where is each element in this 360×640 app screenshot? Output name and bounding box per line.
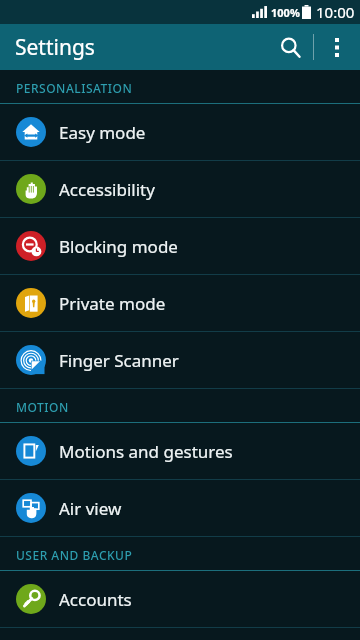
- button[interactable]: Search: [267, 24, 313, 70]
- staticText: 100%: [271, 5, 300, 20]
- staticText: Motions and gestures: [59, 440, 233, 463]
- staticText: Finger Scanner: [59, 349, 179, 372]
- staticText: Accounts: [59, 588, 132, 611]
- button[interactable]: Air view: [0, 480, 360, 536]
- button[interactable]: Blocking mode: [0, 218, 360, 274]
- staticText: Easy mode: [59, 121, 146, 144]
- button[interactable]: Private mode: [0, 275, 360, 331]
- staticText: MOTION: [16, 399, 69, 415]
- staticText: Private mode: [59, 292, 166, 315]
- button[interactable]: Motions and gestures: [0, 423, 360, 479]
- staticText: USER AND BACKUP: [16, 547, 133, 563]
- staticText: Air view: [59, 497, 122, 520]
- staticText: 10:00: [316, 2, 355, 22]
- button[interactable]: Finger Scanner: [0, 332, 360, 388]
- button[interactable]: More options: [314, 24, 360, 70]
- button[interactable]: Easy mode: [0, 104, 360, 160]
- button[interactable]: Accessibility: [0, 161, 360, 217]
- staticText: PERSONALISATION: [16, 80, 133, 96]
- staticText: Blocking mode: [59, 235, 178, 258]
- staticText: Settings: [15, 33, 95, 62]
- button[interactable]: Accounts: [0, 571, 360, 627]
- staticText: Accessibility: [59, 178, 155, 201]
